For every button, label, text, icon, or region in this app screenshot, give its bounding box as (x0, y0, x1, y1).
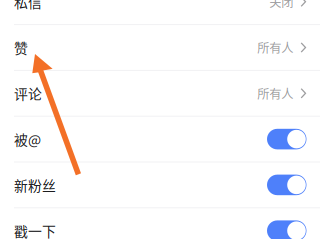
button[interactable]: 私信 (0, 0, 320, 25)
staticText: 私信 (14, 0, 42, 12)
staticText: 关闭 (269, 0, 293, 11)
button[interactable]: 戳一下 (0, 208, 320, 239)
staticText: 所有人 (257, 39, 293, 56)
staticText: 被@ (14, 129, 41, 149)
staticText: 赞 (14, 37, 28, 58)
button[interactable]: 评论 (0, 70, 320, 116)
button[interactable]: 新粉丝 (0, 162, 320, 208)
staticText: 所有人 (257, 84, 293, 102)
button[interactable]: 被@ (0, 116, 320, 162)
button[interactable]: 赞 (0, 25, 320, 70)
staticText: 新粉丝 (14, 175, 56, 195)
staticText: 戳一下 (14, 221, 56, 239)
staticText: 评论 (14, 83, 42, 103)
